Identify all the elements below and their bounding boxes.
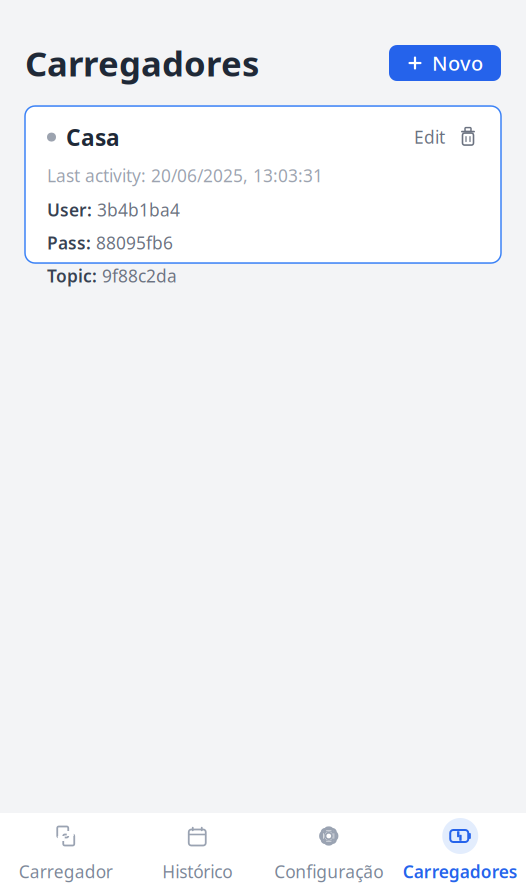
button[interactable]: Carregador: [0, 810, 131, 890]
button[interactable]: Edit: [410, 123, 449, 152]
staticText: Pass:: [47, 231, 91, 254]
button[interactable]: Histórico: [131, 810, 263, 890]
staticText: Casa: [66, 122, 120, 152]
staticText: 9f88c2da: [102, 264, 177, 287]
staticText: 88095fb6: [96, 231, 173, 254]
button[interactable]: Delete charger: [449, 126, 479, 148]
staticText: Carregadores: [403, 860, 518, 883]
staticText: Histórico: [162, 860, 232, 883]
staticText: User:: [47, 198, 92, 221]
button[interactable]: Novo: [389, 45, 501, 81]
staticText: Carregadores: [25, 40, 259, 86]
staticText: Novo: [432, 50, 483, 76]
button[interactable]: Carregadores: [394, 810, 526, 890]
staticText: Edit: [414, 126, 445, 149]
staticText: Topic:: [47, 264, 97, 287]
staticText: 3b4b1ba4: [97, 198, 180, 221]
staticText: Carregador: [19, 860, 113, 883]
button[interactable]: Configuração: [263, 810, 394, 890]
staticText: Configuração: [274, 860, 383, 883]
staticText: Last activity: 20/06/2025, 13:03:31: [47, 164, 323, 187]
